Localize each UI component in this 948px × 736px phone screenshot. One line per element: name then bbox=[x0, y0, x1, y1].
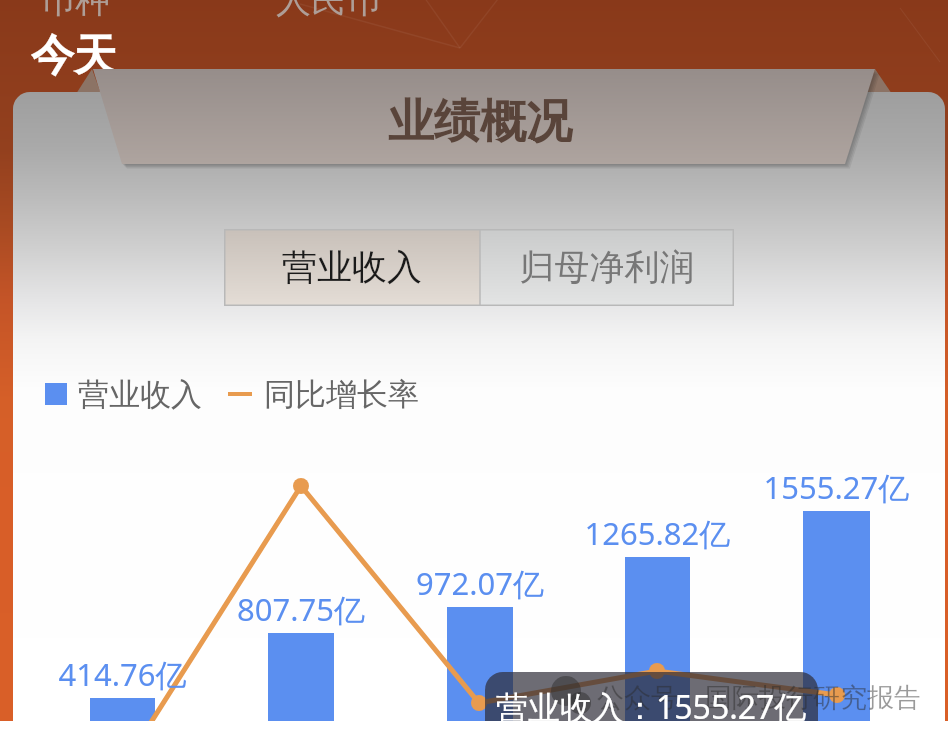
button[interactable] bbox=[224, 229, 480, 306]
button[interactable] bbox=[480, 229, 734, 306]
